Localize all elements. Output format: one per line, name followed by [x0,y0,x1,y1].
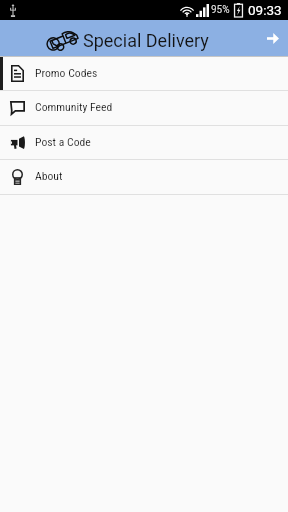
staticText: About [35,169,63,183]
staticText: Promo Codes [35,66,98,80]
staticText: 09:33 [248,2,282,18]
button[interactable]: Post a Code [0,126,288,159]
button[interactable]: About [0,160,288,194]
staticText: Community Feed [35,100,113,114]
staticText: Post a Code [35,135,91,149]
staticText: 95% [211,4,230,16]
staticText: Special Delivery [83,30,209,51]
button[interactable]: Community Feed [0,91,288,125]
button[interactable]: Promo Codes [0,57,288,90]
button[interactable]: Next [258,20,288,56]
